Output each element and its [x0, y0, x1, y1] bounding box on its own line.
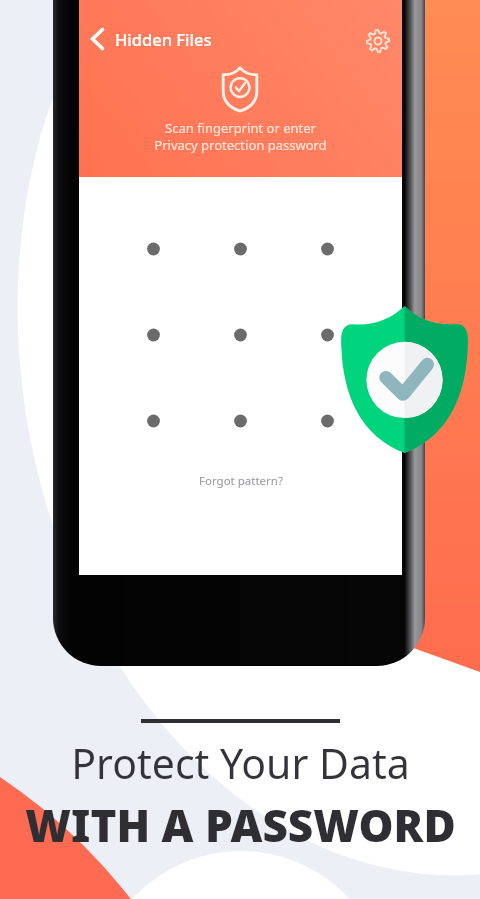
button[interactable]: Back	[83, 25, 111, 53]
staticText: Forgot pattern?	[199, 473, 283, 489]
staticText: WITH A PASSWORD	[25, 795, 456, 855]
button[interactable]: Forgot pattern?	[195, 469, 287, 493]
staticText: Scan fingerprint or enter Privacy protec…	[154, 119, 327, 154]
staticText: Hidden Files	[115, 28, 212, 50]
button[interactable]: Settings	[364, 27, 392, 55]
staticText: Protect Your Data	[71, 735, 410, 791]
button[interactable]: Hidden Files	[115, 25, 212, 53]
